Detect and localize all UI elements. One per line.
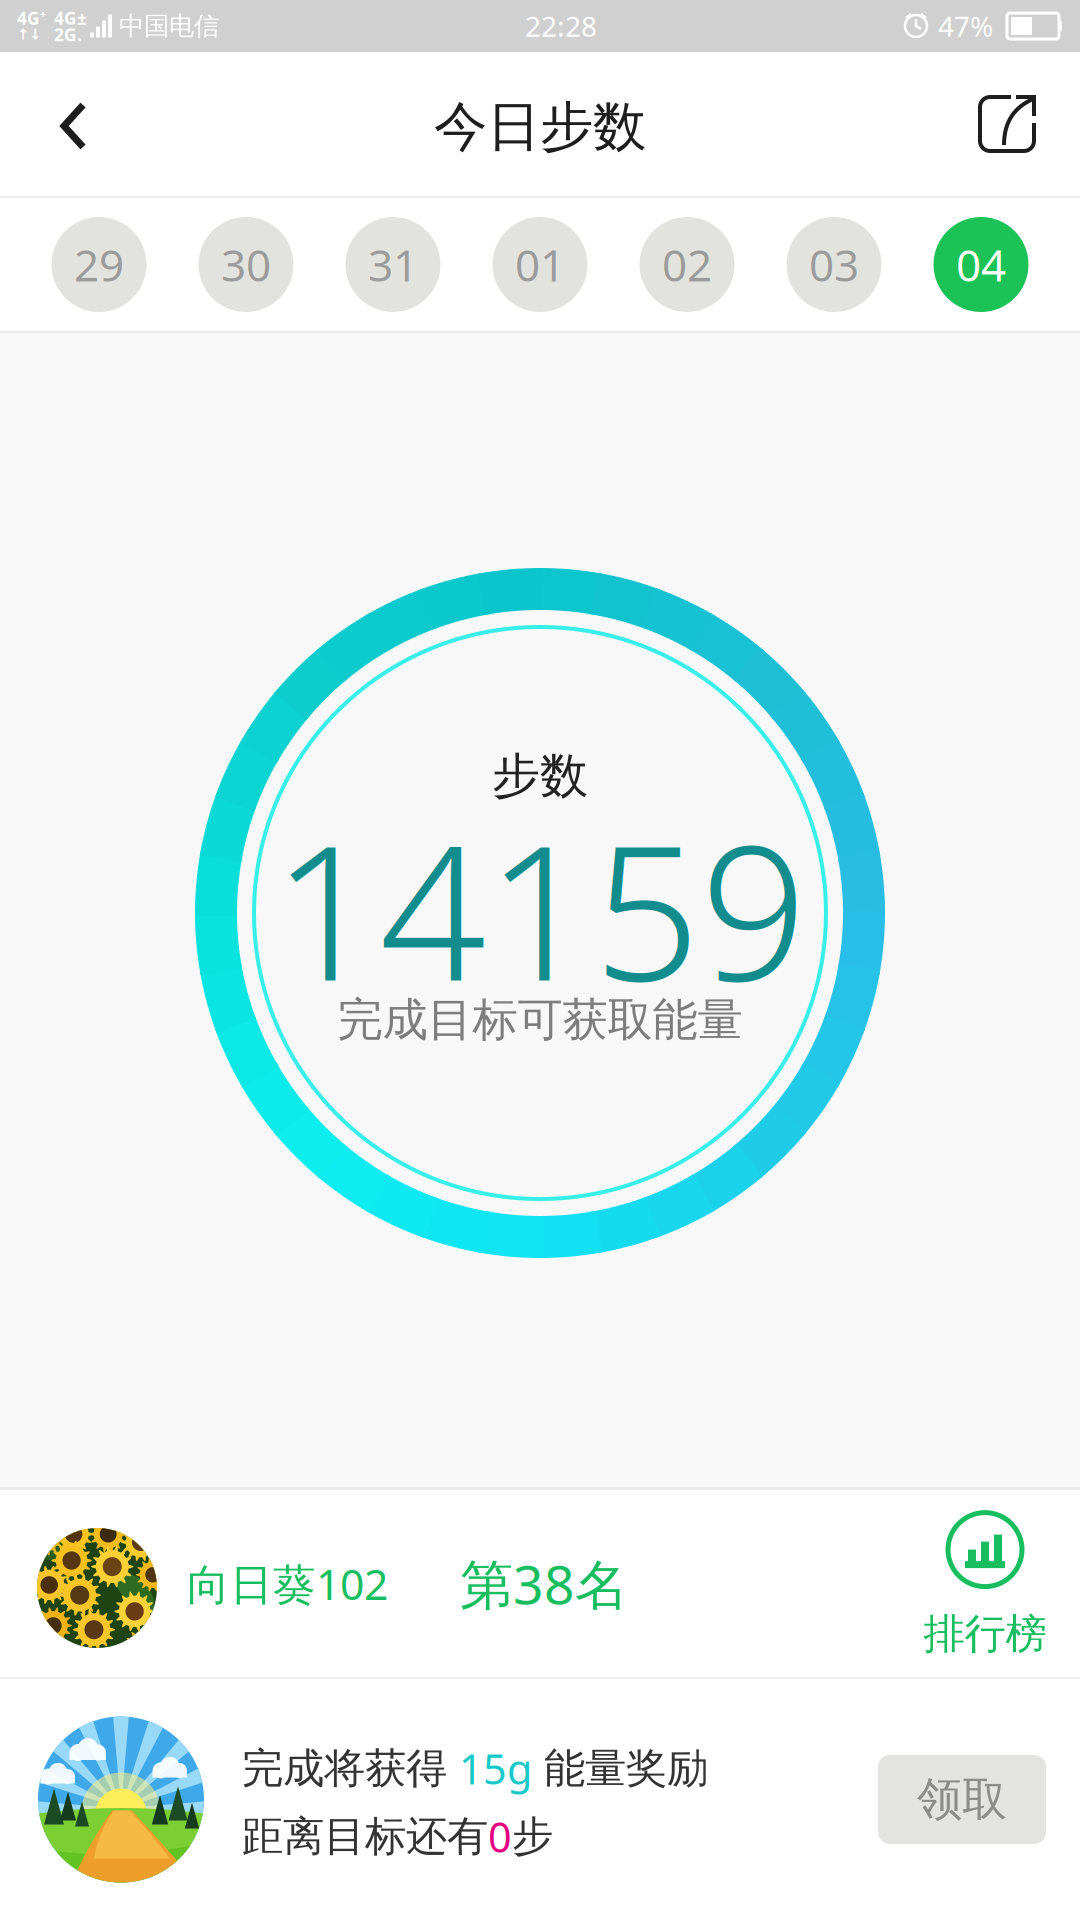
staticText: 第38名 [460, 1548, 628, 1619]
button[interactable]: Back [0, 52, 142, 196]
staticText: 30 [221, 235, 271, 294]
staticText: 22:28 [525, 7, 597, 45]
button[interactable]: 03 [760, 198, 907, 331]
button[interactable]: 31 [319, 198, 466, 331]
staticText: 01 [515, 235, 565, 294]
staticText: 03 [809, 235, 859, 294]
button[interactable]: 领取 [878, 1755, 1046, 1844]
staticText: 31 [368, 235, 418, 294]
staticText: 步 [512, 1811, 553, 1862]
staticText: 4G± [54, 6, 87, 29]
staticText: 完成目标可获取能量 [337, 992, 742, 1048]
staticText: 今日步数 [434, 94, 646, 160]
staticText: 0 [488, 1809, 512, 1864]
button[interactable]: 02 [613, 198, 760, 331]
button[interactable]: Share [934, 52, 1080, 196]
staticText: 04 [956, 235, 1006, 294]
staticText: 距离目标还有 [242, 1811, 488, 1862]
staticText: ↑↓ [17, 26, 41, 43]
staticText: 29 [74, 235, 124, 294]
staticText: 2G. [54, 23, 82, 46]
staticText: 能量奖励 [532, 1743, 708, 1794]
staticText: 完成将获得 [242, 1743, 459, 1794]
button[interactable]: 29 [25, 198, 172, 331]
staticText: 14159 [272, 784, 807, 1032]
staticText: 排行榜 [923, 1609, 1046, 1659]
staticText: 02 [662, 235, 712, 294]
staticText: 向日葵102 [187, 1555, 388, 1612]
staticText: 47% [938, 7, 993, 45]
staticText: 15g [459, 1741, 532, 1796]
staticText: 领取 [917, 1772, 1007, 1827]
button[interactable]: 01 [466, 198, 613, 331]
staticText: 中国电信 [119, 10, 219, 41]
staticText: 步数 [492, 746, 588, 805]
staticText: 4G⁺ [17, 6, 46, 29]
button[interactable]: 30 [172, 198, 319, 331]
button[interactable]: 排行榜 [890, 1487, 1080, 1679]
button[interactable]: 04 [907, 198, 1054, 331]
